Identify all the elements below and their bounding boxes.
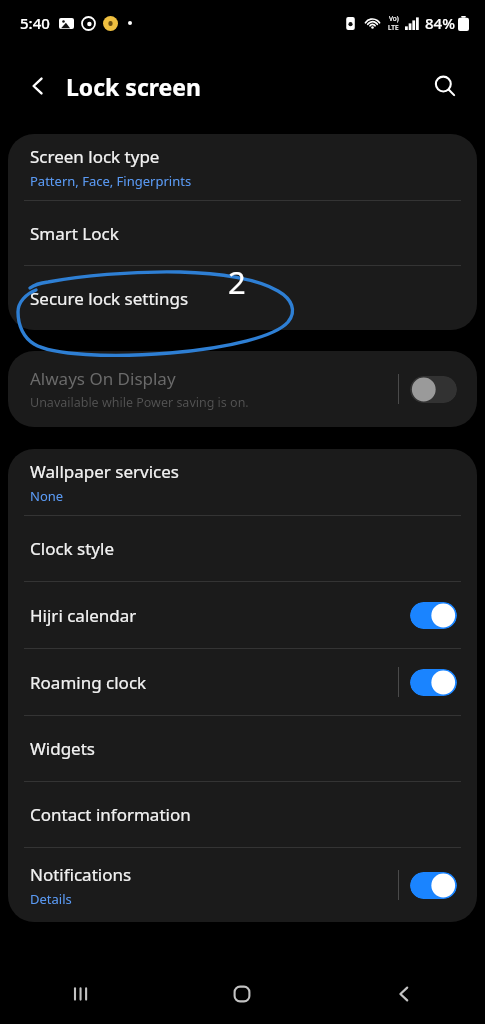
staticText: Roaming clock — [30, 671, 398, 694]
button[interactable]: Switch on — [410, 872, 457, 899]
staticText: Lock screen — [66, 71, 201, 102]
staticText: LTE — [388, 23, 399, 32]
staticText: Notifications — [30, 863, 132, 886]
staticText: 5:40 — [20, 13, 50, 33]
button[interactable]: Always On Display — [8, 351, 477, 427]
button[interactable]: Switch on — [410, 602, 457, 629]
button[interactable]: Home — [210, 964, 274, 1024]
staticText: Secure lock settings — [30, 287, 189, 310]
staticText: 84% — [425, 13, 455, 33]
staticText: Hijri calendar — [30, 604, 398, 627]
staticText: Clock style — [30, 537, 114, 560]
staticText: Details — [30, 890, 72, 908]
button[interactable]: Smart Lock — [8, 201, 477, 265]
staticText: Vo) — [389, 14, 399, 23]
button[interactable]: Recent apps — [49, 964, 113, 1024]
button[interactable]: Secure lock settings — [8, 266, 477, 330]
staticText: Screen lock type — [30, 145, 160, 168]
button[interactable]: Contact information — [8, 782, 477, 847]
button[interactable]: Search — [421, 62, 469, 110]
button[interactable]: Switch off — [410, 376, 457, 403]
staticText: Wallpaper services — [30, 460, 179, 483]
button[interactable]: Roaming clock — [8, 649, 477, 715]
staticText: None — [30, 487, 64, 505]
button[interactable]: Wallpaper services — [8, 449, 477, 515]
button[interactable]: Screen lock type — [8, 134, 477, 200]
button[interactable]: Clock style — [8, 516, 477, 581]
button[interactable]: Notifications — [8, 848, 477, 922]
staticText: 2 — [228, 261, 246, 303]
button[interactable]: Navigate up — [14, 62, 62, 110]
staticText: Contact information — [30, 803, 191, 826]
button[interactable]: Switch on — [410, 669, 457, 696]
staticText: Smart Lock — [30, 222, 119, 245]
button[interactable]: Widgets — [8, 716, 477, 781]
staticText: Always On Display — [30, 367, 176, 390]
button[interactable]: Back — [372, 964, 436, 1024]
staticText: Unavailable while Power saving is on. — [30, 394, 249, 411]
staticText: Pattern, Face, Fingerprints — [30, 172, 192, 190]
staticText: Widgets — [30, 737, 95, 760]
button[interactable]: Hijri calendar — [8, 582, 477, 648]
